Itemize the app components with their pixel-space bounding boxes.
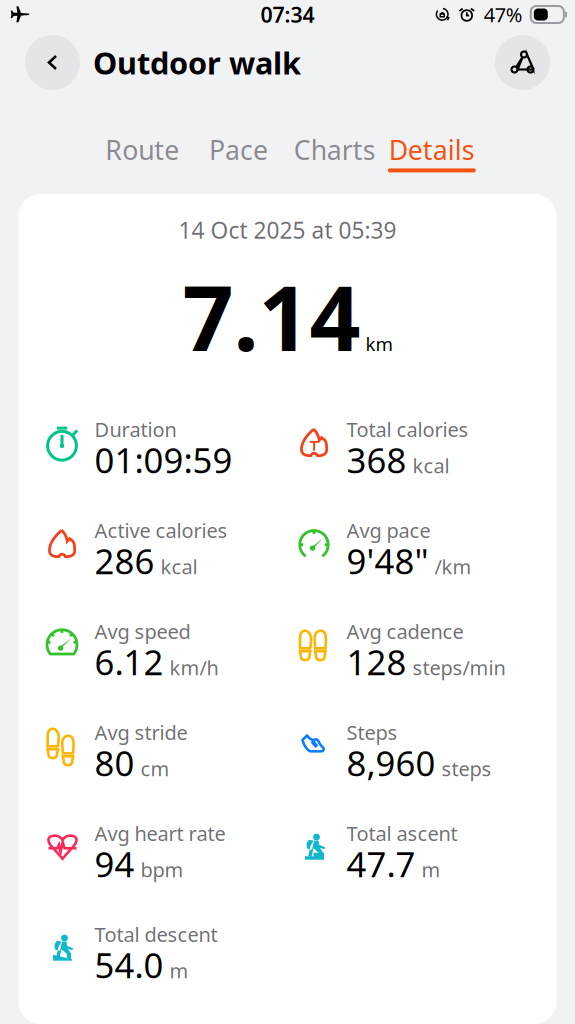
staticText: 14 Oct 2025 at 05:39: [178, 215, 396, 245]
staticText: Active calories: [94, 517, 227, 544]
staticText: steps/min: [412, 654, 505, 681]
staticText: 286: [94, 538, 154, 584]
staticText: 8,960: [346, 740, 435, 786]
staticText: km/h: [169, 654, 218, 681]
staticText: Duration: [94, 416, 176, 443]
staticText: Total descent: [94, 921, 217, 948]
staticText: 9'48": [346, 538, 428, 584]
button[interactable]: Pace: [190, 132, 287, 172]
button[interactable]: Route: [94, 132, 190, 172]
staticText: steps: [441, 755, 491, 782]
staticText: Steps: [346, 719, 397, 746]
staticText: km: [365, 331, 392, 356]
staticText: 47%: [484, 1, 523, 28]
staticText: m: [421, 856, 440, 883]
staticText: 6.12: [94, 639, 163, 685]
staticText: 7.14: [182, 257, 360, 376]
staticText: Route: [105, 132, 179, 167]
staticText: Total ascent: [346, 820, 457, 847]
staticText: Avg stride: [94, 719, 187, 746]
staticText: 368: [346, 437, 406, 483]
staticText: kcal: [412, 452, 449, 479]
staticText: Charts: [294, 132, 376, 167]
staticText: Outdoor walk: [93, 42, 301, 83]
staticText: 54.0: [94, 942, 163, 988]
staticText: 07:34: [260, 0, 314, 29]
staticText: Avg pace: [346, 517, 430, 544]
button[interactable]: Details: [383, 132, 481, 172]
staticText: /km: [434, 553, 471, 580]
staticText: bpm: [140, 856, 183, 883]
staticText: Details: [389, 132, 475, 167]
staticText: 128: [346, 639, 406, 685]
staticText: 47.7: [346, 841, 415, 887]
button[interactable]: Back: [25, 35, 80, 90]
staticText: Avg cadence: [346, 618, 463, 645]
button[interactable]: Share: [495, 35, 550, 90]
staticText: Pace: [209, 132, 268, 167]
staticText: Avg speed: [94, 618, 190, 645]
staticText: 01:09:59: [94, 437, 232, 483]
staticText: Avg heart rate: [94, 820, 225, 847]
staticText: Total calories: [346, 416, 468, 443]
staticText: cm: [140, 755, 169, 782]
staticText: 94: [94, 841, 134, 887]
staticText: 80: [94, 740, 134, 786]
staticText: m: [169, 957, 188, 984]
staticText: kcal: [160, 553, 197, 580]
button[interactable]: Charts: [287, 132, 383, 172]
